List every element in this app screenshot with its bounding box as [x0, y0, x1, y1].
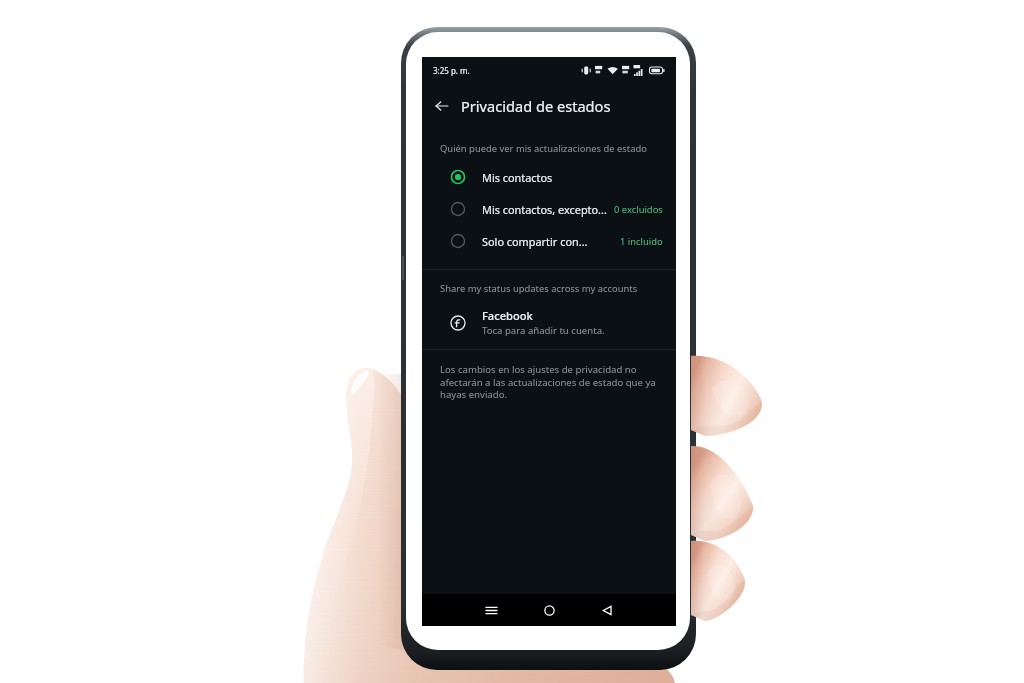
button[interactable]: Mis contactos, excepto...	[422, 193, 676, 225]
staticText: Share my status updates across my accoun…	[440, 282, 638, 295]
staticText: Los cambios en los ajustes de privacidad…	[440, 363, 664, 401]
button[interactable]: Home	[520, 594, 578, 626]
staticText: 3:25 p. m.	[433, 65, 470, 76]
button[interactable]: Back	[578, 594, 636, 626]
button[interactable]: Back	[429, 93, 455, 119]
staticText: Toca para añadir tu cuenta.	[482, 324, 605, 337]
button[interactable]: Solo compartir con...	[422, 225, 676, 257]
staticText: Mis contactos, excepto...	[482, 202, 607, 217]
button[interactable]: Facebook	[422, 308, 676, 337]
staticText: Privacidad de estados	[461, 96, 611, 116]
button[interactable]: Recent apps	[462, 594, 520, 626]
staticText: 1 incluido	[620, 235, 663, 248]
staticText: Mis contactos	[482, 170, 553, 185]
staticText: Facebook	[482, 308, 533, 323]
staticText: 0 excluidos	[614, 203, 663, 216]
staticText: Quién puede ver mis actualizaciones de e…	[440, 142, 647, 155]
staticText: Solo compartir con...	[482, 234, 588, 249]
button[interactable]: Mis contactos	[422, 161, 676, 193]
